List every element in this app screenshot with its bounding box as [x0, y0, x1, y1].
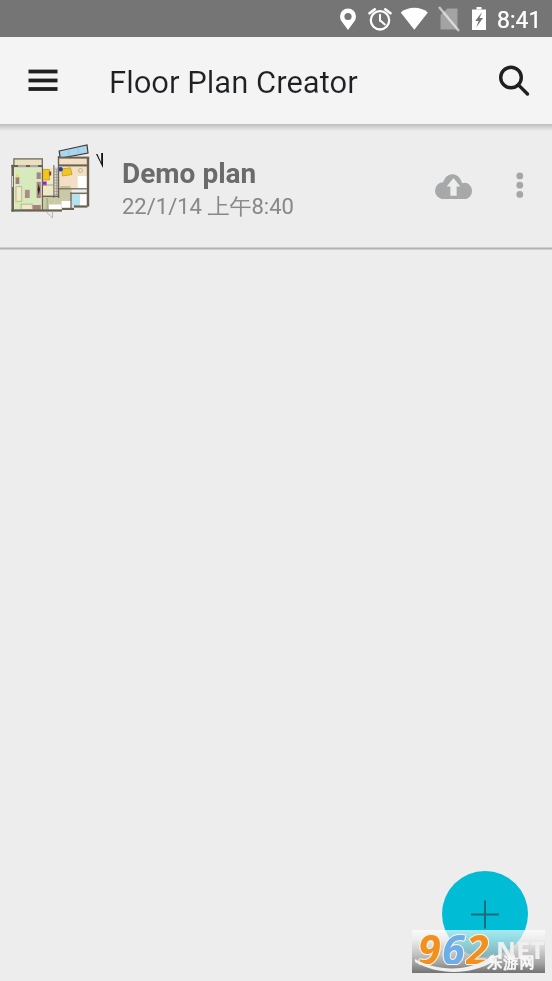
staticText: 8:41	[497, 7, 542, 34]
button[interactable]: More options	[498, 156, 542, 200]
staticText: 6	[442, 921, 466, 964]
staticText: 9	[418, 922, 442, 965]
staticText: 6	[443, 921, 467, 964]
staticText: 6	[442, 922, 466, 965]
staticText: 22/1/14 上午8:40	[122, 193, 294, 221]
staticText: 9	[419, 921, 443, 964]
staticText: 2	[465, 921, 489, 964]
staticText: 乐游网	[487, 954, 536, 973]
button[interactable]: Upload to cloud	[429, 163, 478, 212]
staticText: Demo plan	[122, 157, 257, 190]
staticText: 2	[466, 921, 490, 964]
button[interactable]: Menu	[14, 52, 70, 108]
staticText: 9	[418, 921, 442, 964]
staticText: 9	[418, 920, 442, 963]
staticText: 9	[417, 921, 441, 964]
staticText: 2	[467, 921, 491, 964]
button[interactable]: Search	[483, 50, 539, 106]
staticText: 2	[466, 920, 490, 963]
staticText: 6	[441, 921, 465, 964]
staticText: 6	[442, 920, 466, 963]
staticText: Floor Plan Creator	[109, 64, 358, 100]
button[interactable]: Add new plan	[442, 871, 528, 957]
staticText: .NET	[489, 933, 545, 966]
staticText: 2	[466, 922, 490, 965]
button[interactable]: Demo plan	[0, 131, 552, 247]
